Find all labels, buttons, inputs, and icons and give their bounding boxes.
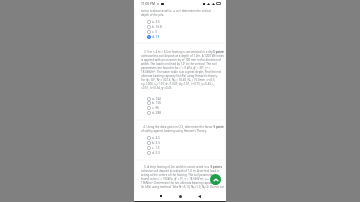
staticText: 11:05 PM (141, 2, 155, 6)
staticText: c. 96 (152, 106, 159, 110)
staticText: a. 2.5 (152, 136, 160, 140)
staticText: c. 1.5 (152, 146, 160, 150)
button[interactable]: Back (194, 191, 204, 201)
staticText: 5. A strip footing of 2m width is constr… (141, 165, 224, 189)
staticText: d. 288 (152, 111, 161, 115)
button[interactable]: c. 1.5 (147, 145, 226, 150)
staticText: d. 5.5 (152, 151, 161, 155)
button[interactable]: c. 96 (147, 105, 226, 110)
staticText: a. 3.5 (152, 20, 160, 24)
button[interactable]: b. 3.5 (147, 140, 226, 145)
button[interactable]: a. 3.5 (147, 19, 226, 24)
staticText: stress is above axial (σᵥ ≥ σₖᵖ) determi… (141, 9, 211, 17)
staticText: 4. Using the data given in Q 3, determin… (141, 125, 224, 133)
staticText: 3. 5 m × 4 m × 4.5 m footing is construc… (141, 50, 224, 90)
staticText: b. 156 (152, 101, 161, 105)
button[interactable]: a. 144 (147, 96, 226, 101)
button[interactable]: b. 16.8 (147, 24, 226, 29)
button[interactable]: b. 156 (147, 100, 226, 105)
staticText: d. 13 (152, 35, 160, 39)
staticText: b. 16.8 (152, 25, 162, 29)
staticText: b. 3.5 (152, 141, 161, 145)
staticText: c. 5 (152, 30, 157, 34)
button[interactable]: Recents (156, 191, 166, 201)
button[interactable]: c. 5 (147, 29, 226, 34)
staticText: a. 144 (152, 97, 161, 101)
button[interactable]: Scroll to top (210, 174, 221, 185)
button[interactable]: d. 288 (147, 110, 226, 115)
button[interactable]: d. 13 (147, 34, 226, 39)
button[interactable]: Home (175, 191, 185, 201)
button[interactable]: d. 5.5 (147, 150, 226, 155)
button[interactable]: a. 2.5 (147, 135, 226, 140)
